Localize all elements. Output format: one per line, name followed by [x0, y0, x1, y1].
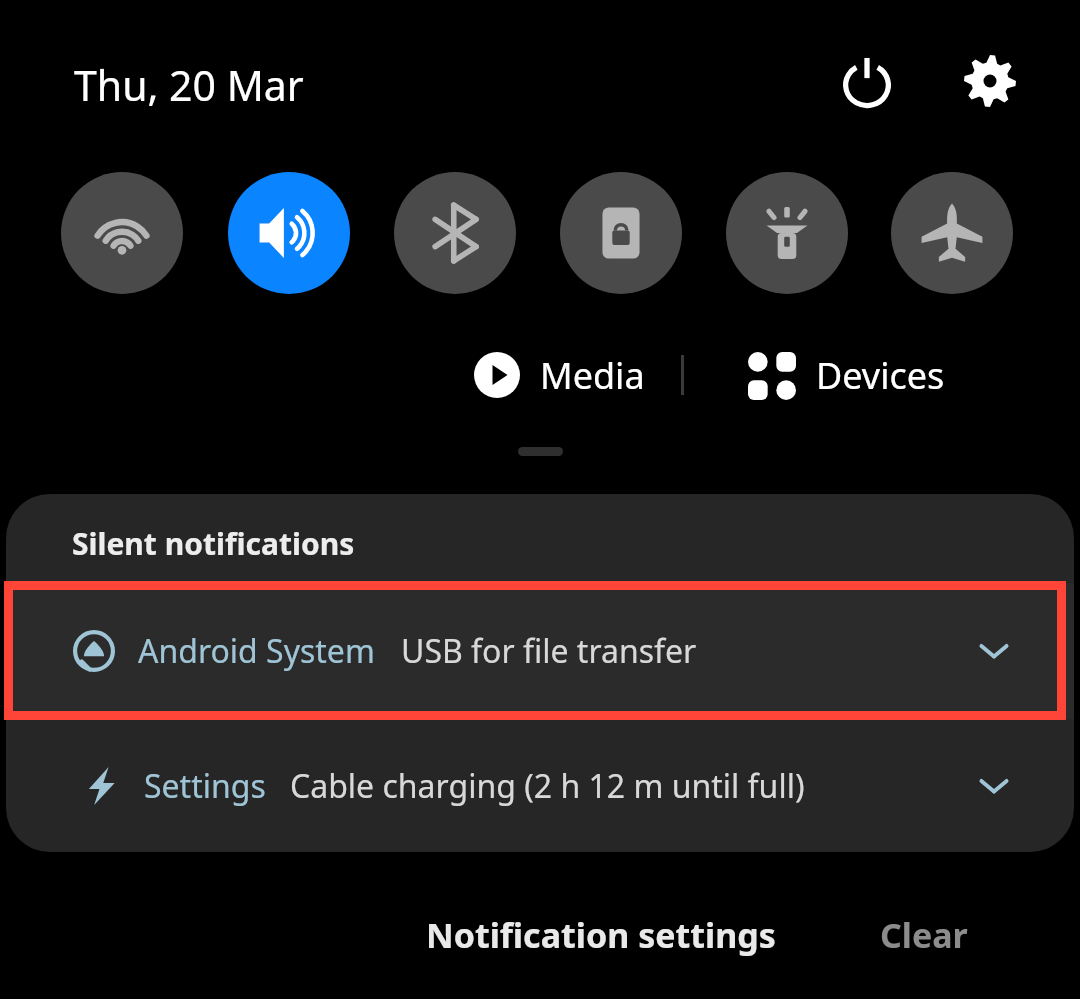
staticText: Android System — [138, 629, 375, 673]
button[interactable]: Clear — [858, 898, 990, 972]
button[interactable]: Bluetooth — [394, 172, 516, 294]
staticText: Media — [540, 351, 645, 400]
button[interactable]: Settings — [951, 42, 1029, 120]
staticText: Cable charging (2 h 12 m until full) — [290, 764, 805, 808]
staticText: Notification settings — [426, 912, 776, 958]
button[interactable]: Screen lock — [560, 172, 682, 294]
button[interactable]: Media — [466, 344, 651, 406]
button[interactable]: Flashlight — [726, 172, 848, 294]
staticText: Settings — [144, 764, 266, 808]
button[interactable]: Expand — [966, 623, 1022, 679]
button[interactable]: Airplane mode — [891, 172, 1013, 294]
button[interactable]: Expand — [966, 758, 1022, 814]
staticText: Devices — [816, 351, 945, 400]
button[interactable]: Devices — [742, 345, 951, 406]
staticText: Clear — [880, 912, 968, 958]
staticText: Silent notifications — [72, 523, 355, 564]
button[interactable]: Android System — [6, 583, 1074, 719]
button[interactable]: Notification settings — [404, 898, 798, 972]
staticText: Thu, 20 Mar — [74, 57, 304, 113]
staticText: USB for file transfer — [401, 629, 697, 673]
button[interactable]: Wi-Fi — [61, 172, 183, 294]
button[interactable]: Sound — [228, 172, 350, 294]
button[interactable]: Power — [828, 42, 906, 120]
button[interactable]: Settings — [6, 723, 1074, 849]
